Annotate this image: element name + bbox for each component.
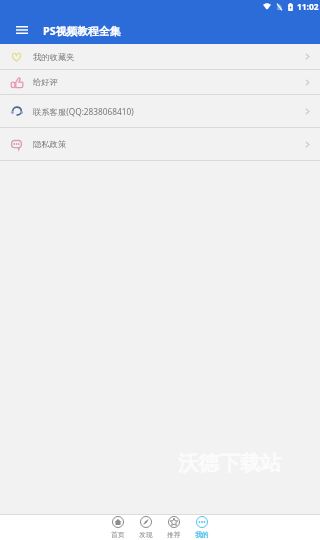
staticText: 11:02	[297, 1, 319, 12]
staticText: 沃德下载站	[178, 450, 281, 476]
staticText: PS视频教程全集	[43, 23, 121, 38]
staticText: 给好评	[33, 77, 58, 87]
staticText: 推荐	[167, 530, 181, 539]
staticText: 我的收藏夹	[33, 52, 75, 62]
button[interactable]: 我的收藏夹	[0, 44, 320, 69]
button[interactable]: 首页	[104, 515, 132, 540]
staticText: 我的	[195, 530, 209, 539]
staticText: 联系客服(QQ:2838068410)	[33, 106, 134, 117]
staticText: 发现	[139, 530, 153, 539]
button[interactable]: Open navigation menu	[8, 17, 35, 44]
button[interactable]: 推荐	[160, 515, 188, 540]
staticText: 隐私政策	[33, 139, 67, 149]
staticText: 首页	[111, 530, 125, 539]
button[interactable]: 隐私政策	[0, 128, 320, 160]
button[interactable]: 我的	[188, 515, 216, 540]
button[interactable]: 联系客服(QQ:2838068410)	[0, 95, 320, 127]
button[interactable]: 给好评	[0, 70, 320, 94]
button[interactable]: 发现	[132, 515, 160, 540]
